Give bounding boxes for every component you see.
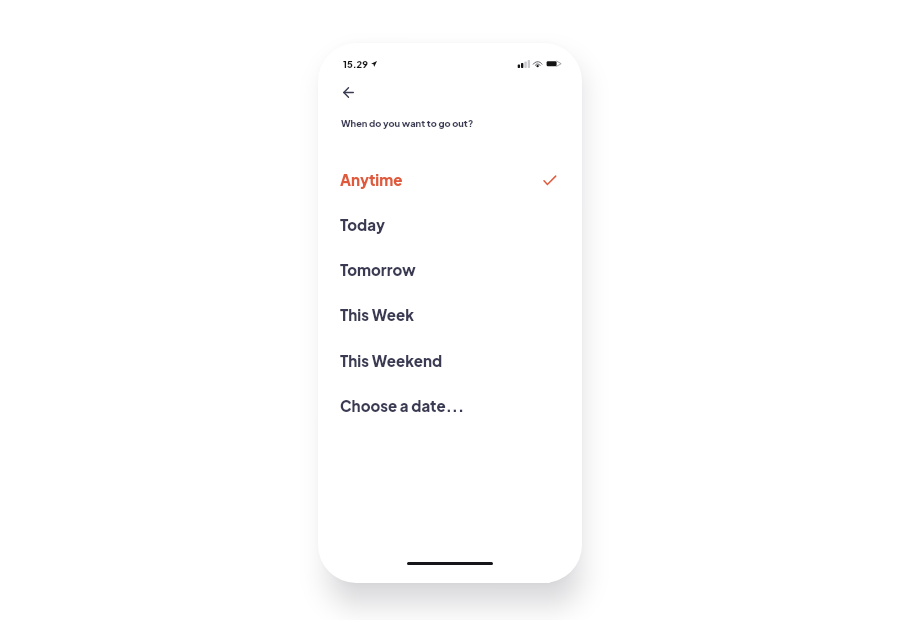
button[interactable]: Back xyxy=(331,75,365,109)
staticText: This Week xyxy=(340,305,414,324)
button[interactable]: Anytime xyxy=(318,158,582,203)
staticText: Choose a date... xyxy=(340,396,465,415)
staticText: This Weekend xyxy=(340,351,443,370)
button[interactable]: Choose a date... xyxy=(318,384,582,429)
staticText: Today xyxy=(340,215,386,234)
button[interactable]: This Weekend xyxy=(318,339,582,384)
button[interactable]: Tomorrow xyxy=(318,248,582,293)
button[interactable]: Today xyxy=(318,203,582,248)
button[interactable]: This Week xyxy=(318,293,582,338)
staticText: 15.29 xyxy=(343,58,368,70)
staticText: When do you want to go out? xyxy=(341,117,474,129)
staticText: Tomorrow xyxy=(340,260,416,279)
staticText: Anytime xyxy=(340,170,403,189)
